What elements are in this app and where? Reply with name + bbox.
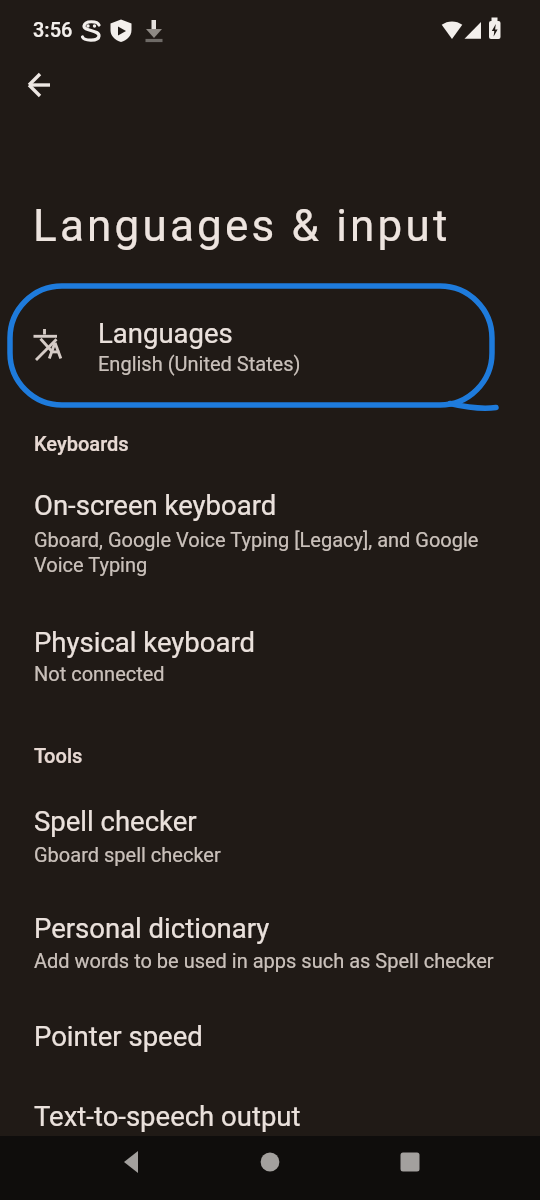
staticText: Physical keyboard (34, 626, 255, 658)
staticText: On-screen keyboard (34, 489, 277, 521)
staticText: Pointer speed (34, 1020, 203, 1052)
button[interactable]: Languages (0, 296, 540, 406)
button[interactable] (15, 61, 63, 109)
staticText: Voice Typing (34, 553, 148, 576)
staticText: Text-to-speech output (34, 1100, 301, 1132)
staticText: Gboard spell checker (34, 843, 221, 866)
button[interactable]: Text-to-speech output (0, 1078, 540, 1133)
button[interactable] (246, 1138, 294, 1186)
staticText: Not connected (34, 662, 165, 685)
staticText: Spell checker (34, 805, 197, 837)
staticText: Gboard, Google Voice Typing [Legacy], an… (34, 528, 479, 551)
staticText: Personal dictionary (34, 912, 270, 944)
button[interactable]: Physical keyboard (0, 604, 540, 714)
staticText: Add words to be used in apps such as Spe… (34, 949, 494, 972)
staticText: Languages & input (33, 200, 451, 252)
button[interactable] (107, 1138, 155, 1186)
button[interactable] (386, 1138, 434, 1186)
staticText: Languages (98, 317, 233, 349)
button[interactable]: On-screen keyboard (0, 467, 540, 607)
staticText: English (United States) (98, 352, 301, 375)
staticText: 3:56 (33, 18, 73, 41)
button[interactable]: Personal dictionary (0, 890, 540, 1000)
button[interactable]: Pointer speed (0, 998, 540, 1098)
button[interactable]: Spell checker (0, 783, 540, 893)
staticText: Tools (34, 744, 83, 767)
staticText: Keyboards (34, 432, 129, 455)
